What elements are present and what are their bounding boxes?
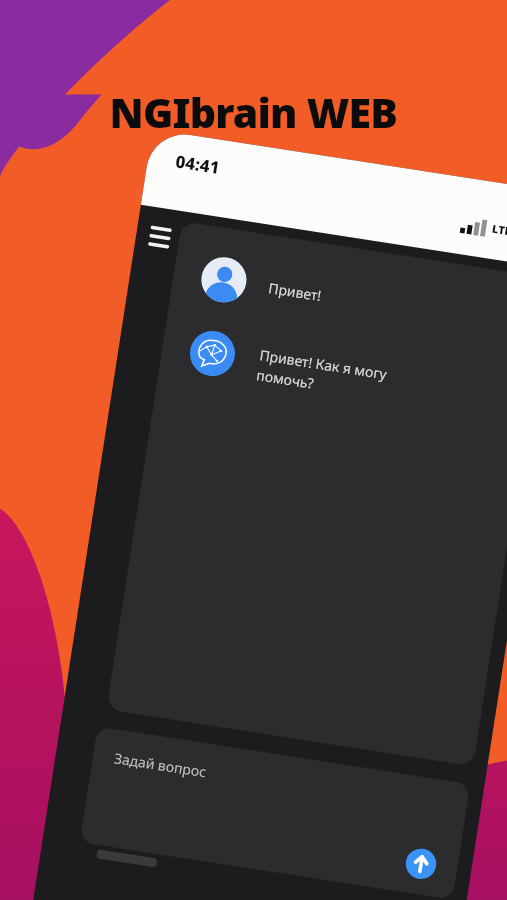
button[interactable]: Задай вопрос [30, 775, 330, 835]
button[interactable]: Open menu [114, 228, 150, 264]
